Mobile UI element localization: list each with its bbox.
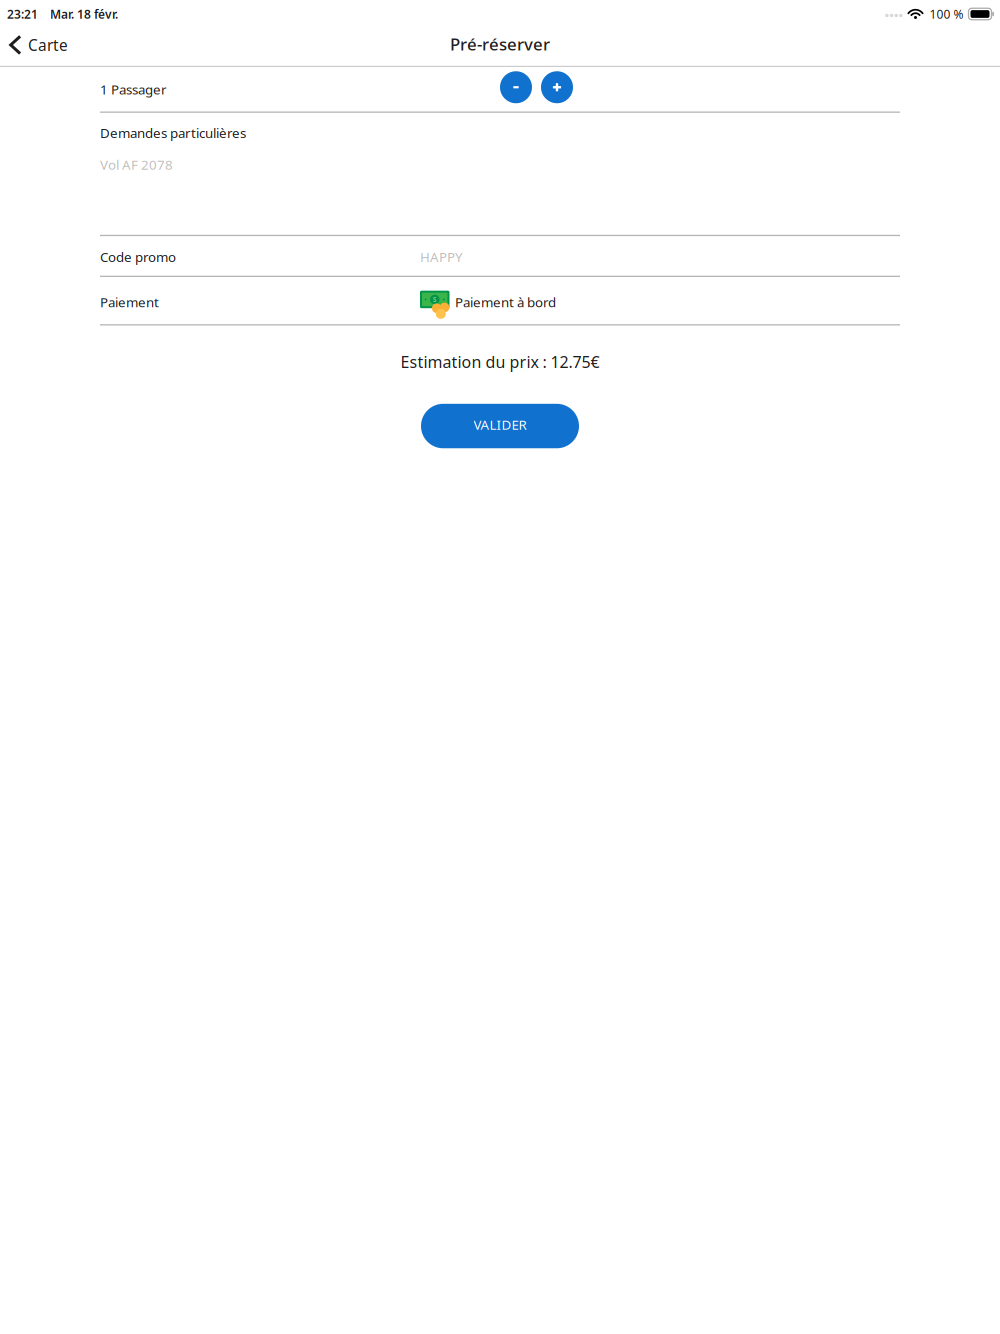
staticText: HAPPY [420, 248, 463, 266]
button[interactable]: Code promo [100, 236, 900, 276]
staticText: VALIDER [473, 415, 526, 434]
button[interactable]: Retirer un passager [500, 71, 532, 103]
button[interactable]: Paiement [100, 277, 900, 324]
staticText: 1 Passager [100, 80, 167, 98]
staticText: Estimation du prix : 12.75€ [400, 351, 599, 373]
staticText: Demandes particulières [100, 124, 246, 142]
staticText: Code promo [100, 248, 176, 266]
button[interactable]: Carte [0, 28, 68, 62]
staticText: Vol AF 2078 [100, 155, 173, 174]
staticText: S [433, 295, 437, 304]
staticText: Pré-réserver [450, 33, 550, 55]
button[interactable]: VALIDER [421, 404, 579, 448]
button[interactable]: Demandes particulières [100, 113, 900, 235]
staticText: Paiement à bord [455, 293, 556, 311]
staticText: Mar. 18 févr. [50, 6, 118, 22]
staticText: 23:21 [7, 6, 38, 22]
staticText: Carte [28, 35, 68, 55]
staticText: 100 % [929, 6, 963, 22]
button[interactable]: Ajouter un passager [541, 71, 573, 103]
staticText: Paiement [100, 293, 159, 311]
